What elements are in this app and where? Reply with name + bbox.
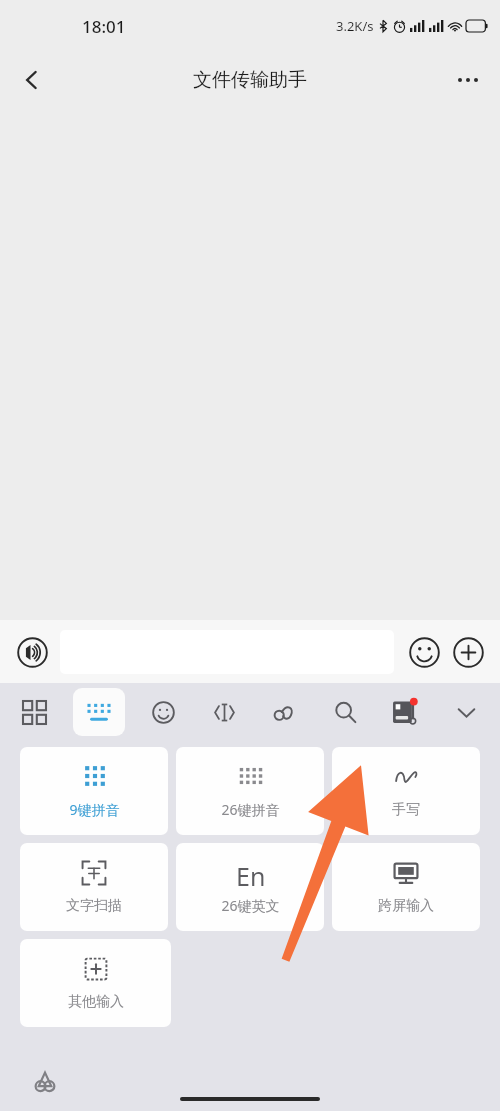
- button[interactable]: Keyboard: [73, 688, 125, 736]
- button[interactable]: 其他输入: [20, 939, 171, 1027]
- staticText: 其他输入: [68, 993, 124, 1011]
- staticText: 文件传输助手: [193, 68, 307, 92]
- button[interactable]: Search: [323, 690, 367, 734]
- button[interactable]: Emoji: [404, 632, 444, 672]
- button[interactable]: Text tools: [202, 690, 246, 734]
- staticText: 26键拼音: [221, 800, 280, 819]
- button[interactable]: 跨屏输入: [332, 843, 480, 931]
- staticText: 手写: [392, 801, 420, 819]
- button[interactable]: More options: [444, 56, 492, 104]
- button[interactable]: 文字扫描: [20, 843, 168, 931]
- button[interactable]: Back: [8, 56, 56, 104]
- staticText: 26键英文: [221, 896, 280, 915]
- staticText: 3.2K/s: [336, 17, 374, 35]
- button[interactable]: 手写: [332, 747, 480, 835]
- button[interactable]: Panel grid: [12, 690, 56, 734]
- staticText: 跨屏输入: [378, 897, 434, 915]
- button[interactable]: En: [176, 843, 324, 931]
- staticText: En: [236, 859, 266, 893]
- button[interactable]: 9键拼音: [20, 747, 168, 835]
- button[interactable]: Voice input: [12, 632, 52, 672]
- button[interactable]: Collapse keyboard: [444, 690, 488, 734]
- button[interactable]: Emoji: [141, 690, 185, 734]
- staticText: 18:01: [82, 15, 126, 38]
- button[interactable]: More functions: [448, 632, 488, 672]
- staticText: 文字扫描: [66, 897, 122, 915]
- button[interactable]: Input method logo: [28, 1065, 62, 1099]
- button[interactable]: Skin store: [383, 690, 427, 734]
- staticText: 9键拼音: [69, 800, 120, 819]
- button[interactable]: 26键拼音: [176, 747, 324, 835]
- button[interactable]: Clipboard link: [262, 690, 306, 734]
